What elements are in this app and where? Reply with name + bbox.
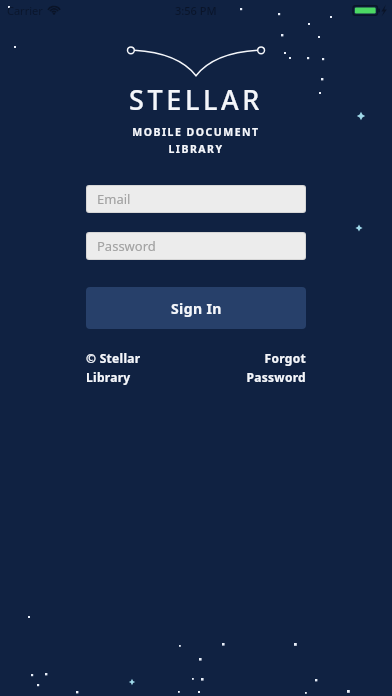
staticText: MOBILE DOCUMENT LIBRARY (132, 125, 260, 156)
staticText: STELLAR (129, 81, 263, 118)
staticText: Carrier (7, 3, 43, 18)
staticText: Password (97, 237, 156, 255)
staticText: 3:56 PM (175, 3, 217, 18)
button[interactable]: Forgot Password (196, 350, 306, 385)
staticText: © Stellar Library (86, 350, 141, 385)
button[interactable]: © Stellar Library (86, 350, 196, 385)
button[interactable]: Password (87, 233, 305, 259)
button[interactable]: Email (87, 186, 305, 212)
button[interactable]: Sign In (86, 287, 306, 329)
staticText: Sign In (171, 299, 222, 318)
staticText: Forgot Password (246, 350, 306, 385)
staticText: Email (97, 190, 131, 208)
